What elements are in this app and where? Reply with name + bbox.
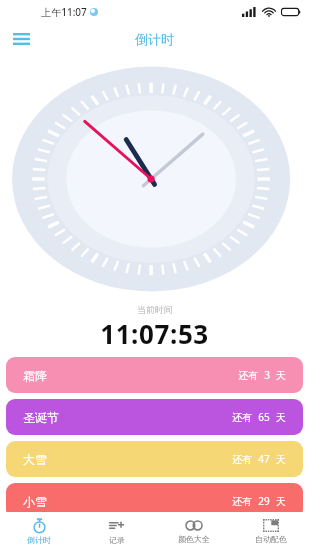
button[interactable]: Menu bbox=[6, 24, 36, 54]
staticText: 还有 bbox=[232, 453, 252, 466]
staticText: 圣诞节 bbox=[23, 410, 59, 425]
staticText: 当前时间 bbox=[137, 304, 173, 315]
staticText: 3 bbox=[264, 368, 270, 382]
staticText: 29 bbox=[258, 494, 270, 508]
button[interactable]: 大雪 bbox=[6, 441, 303, 477]
staticText: 倒计时 bbox=[135, 31, 174, 47]
staticText: 自动配色 bbox=[255, 534, 287, 544]
button[interactable]: 自动配色 bbox=[232, 512, 309, 550]
staticText: 47 bbox=[258, 452, 270, 466]
staticText: 还有 bbox=[232, 411, 252, 424]
staticText: 11:07:53 bbox=[100, 316, 209, 351]
staticText: 大雪 bbox=[23, 452, 47, 467]
staticText: 天 bbox=[276, 369, 286, 382]
staticText: 记录 bbox=[109, 535, 125, 545]
staticText: 霜降 bbox=[23, 368, 47, 383]
staticText: 颜色大全 bbox=[178, 534, 210, 544]
staticText: 天 bbox=[276, 453, 286, 466]
button[interactable]: 霜降 bbox=[6, 357, 303, 393]
button[interactable]: 倒计时 bbox=[0, 512, 78, 550]
staticText: 还有 bbox=[232, 495, 252, 508]
staticText: 上午11:07 bbox=[41, 5, 87, 19]
staticText: 天 bbox=[276, 495, 286, 508]
button[interactable]: 记录 bbox=[78, 512, 155, 550]
button[interactable]: 小雪 bbox=[6, 483, 303, 519]
staticText: 还有 bbox=[238, 369, 258, 382]
staticText: 65 bbox=[258, 410, 270, 424]
button[interactable]: 颜色大全 bbox=[155, 512, 232, 550]
staticText: 小雪 bbox=[23, 494, 47, 509]
staticText: 倒计时 bbox=[27, 535, 51, 545]
button[interactable]: 圣诞节 bbox=[6, 399, 303, 435]
staticText: 天 bbox=[276, 411, 286, 424]
